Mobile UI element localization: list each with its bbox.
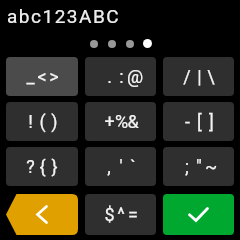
button[interactable]: / [163, 57, 234, 96]
staticText: $ [104, 204, 115, 225]
staticText: \ [207, 66, 215, 87]
staticText: & [127, 111, 139, 132]
staticText: = [128, 204, 138, 225]
button[interactable]: ; [163, 147, 234, 186]
button[interactable]: ? [6, 147, 78, 186]
staticText: | [197, 66, 202, 87]
staticText: / [183, 66, 191, 87]
staticText: ; [185, 156, 189, 177]
staticText: - [185, 111, 190, 132]
staticText: ! [28, 111, 33, 132]
button[interactable]: . [85, 57, 156, 96]
staticText: ( [39, 111, 46, 132]
button[interactable]: Enter [163, 194, 234, 235]
button[interactable]: Backspace [6, 194, 78, 235]
staticText: ' [119, 156, 123, 177]
staticText: < [37, 66, 47, 87]
staticText: ] [209, 111, 214, 132]
button[interactable]: - [163, 102, 234, 141]
button[interactable]: , [85, 147, 156, 186]
staticText: ) [51, 111, 58, 132]
button[interactable]: ! [6, 102, 78, 141]
staticText: , [107, 156, 111, 177]
button[interactable]: + [85, 102, 156, 141]
staticText: ` [130, 156, 136, 177]
staticText: abc123ABC [7, 5, 121, 27]
staticText: { [39, 156, 46, 177]
staticText: " [196, 156, 202, 177]
button[interactable]: _ [6, 57, 78, 96]
staticText: > [49, 66, 59, 87]
staticText: } [51, 156, 58, 177]
staticText: ^ [117, 204, 125, 225]
button[interactable]: $ [85, 194, 156, 235]
staticText: [ [197, 111, 202, 132]
staticText: + [104, 111, 115, 132]
staticText: @ [127, 66, 139, 87]
staticText: . [107, 66, 112, 87]
staticText: ? [26, 156, 35, 177]
staticText: ~ [205, 156, 217, 177]
staticText: : [119, 66, 124, 87]
staticText: % [115, 111, 127, 132]
staticText: _ [26, 66, 35, 87]
